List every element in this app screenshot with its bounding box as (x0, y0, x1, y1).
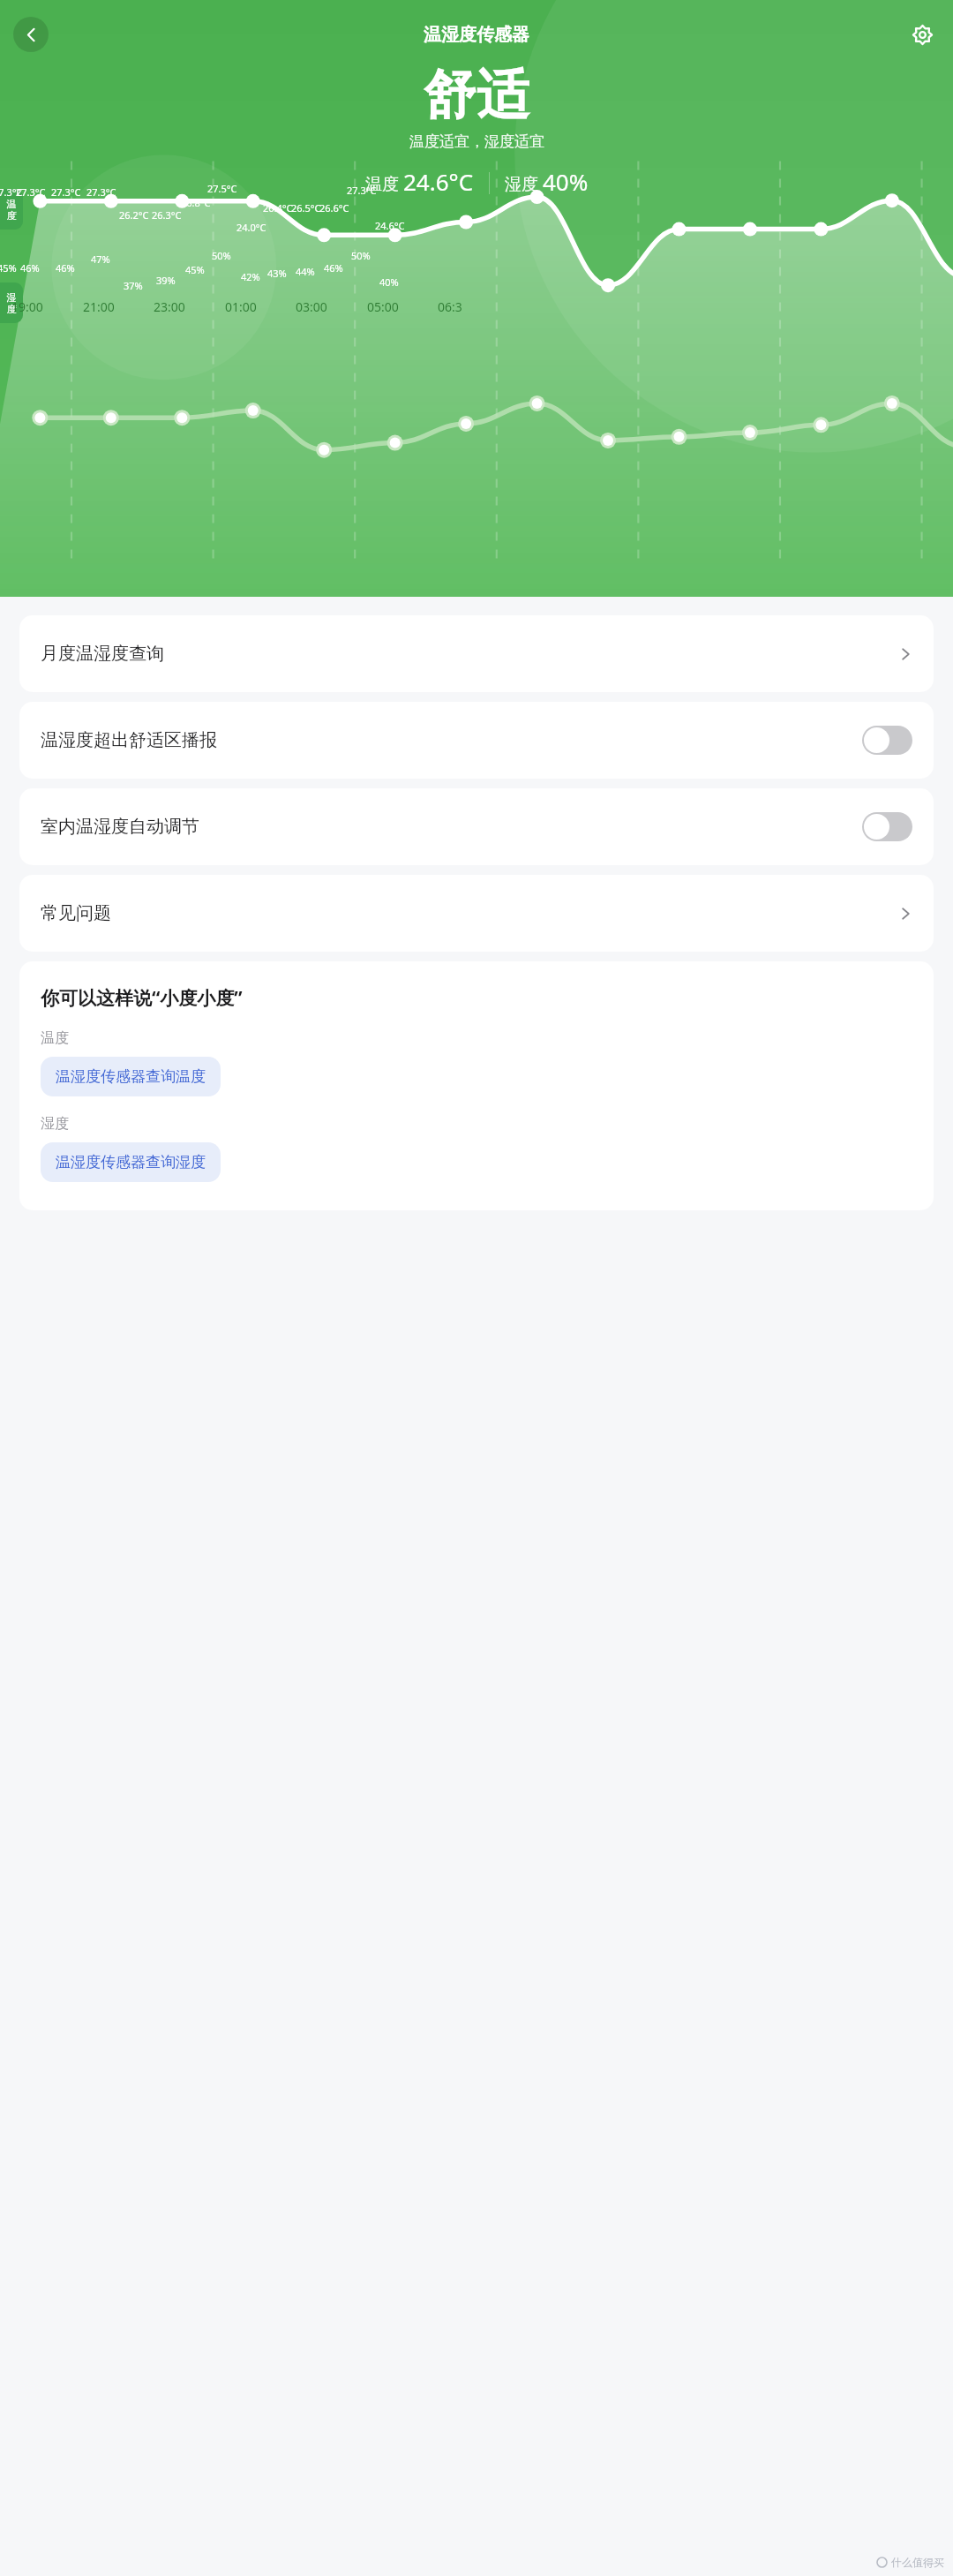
staticText: 温度适宜，湿度适宜 (409, 132, 544, 151)
staticText: 39% (156, 274, 176, 287)
staticText: 温度 (41, 1029, 69, 1047)
staticText: 47% (91, 252, 110, 266)
staticText: 45% (0, 261, 17, 275)
staticText: 你可以这样说“小度小度” (41, 985, 243, 1011)
staticText: 什么值得买 (891, 2556, 944, 2569)
staticText: 19:00 (11, 298, 43, 315)
staticText: 27.3°C (0, 185, 23, 199)
staticText: 40% (543, 166, 589, 197)
staticText: 24.6°C (403, 166, 474, 197)
staticText: 温湿度传感器查询湿度 (56, 1153, 206, 1171)
button[interactable]: 温湿度超出舒适区播报 (19, 702, 934, 779)
staticText: 26.5°C (291, 201, 321, 215)
button[interactable]: 室内温湿度自动调节 (19, 788, 934, 865)
button[interactable]: 月度温湿度查询 (19, 615, 934, 692)
staticText: 舒适 (424, 62, 529, 129)
button[interactable]: 常见问题 (19, 875, 934, 952)
staticText: 27.5°C (207, 182, 237, 195)
staticText: 27.3°C (51, 185, 81, 199)
button[interactable]: Settings (904, 17, 940, 52)
staticText: 温度 (6, 198, 17, 222)
staticText: 44% (296, 265, 315, 278)
staticText: 37% (124, 279, 143, 292)
staticText: 温湿度传感器查询温度 (56, 1067, 206, 1086)
staticText: 40% (379, 275, 399, 289)
staticText: 27.3°C (347, 184, 377, 197)
staticText: 温湿度超出舒适区播报 (41, 729, 217, 751)
staticText: 26.3°C (152, 208, 182, 222)
staticText: 26.6°C (319, 201, 349, 215)
staticText: 湿度 (41, 1115, 69, 1133)
staticText: 常见问题 (41, 902, 111, 924)
staticText: 06:3 (438, 298, 462, 315)
staticText: 月度温湿度查询 (41, 643, 164, 665)
staticText: 温度 (365, 172, 403, 195)
staticText: 03:00 (296, 298, 327, 315)
button[interactable]: 温湿度传感器查询温度 (41, 1057, 221, 1096)
button[interactable]: 温湿度传感器查询湿度 (41, 1142, 221, 1182)
staticText: 24.6°C (375, 219, 405, 232)
staticText: 05:00 (367, 298, 399, 315)
staticText: 46% (56, 261, 75, 275)
staticText: 27.3°C (86, 185, 116, 199)
staticText: 43% (267, 267, 287, 280)
staticText: 21:00 (83, 298, 115, 315)
staticText: 湿度 (505, 172, 543, 195)
staticText: 46% (324, 261, 343, 275)
staticText: 室内温湿度自动调节 (41, 816, 199, 838)
staticText: 26.8°C (181, 196, 211, 209)
staticText: 42% (241, 270, 260, 283)
staticText: 50% (351, 249, 371, 262)
staticText: 24.0°C (236, 221, 266, 234)
staticText: 26.4°C (263, 201, 293, 215)
staticText: 26.2°C (119, 208, 149, 222)
staticText: 01:00 (225, 298, 257, 315)
staticText: 湿度 (6, 291, 17, 315)
button[interactable]: Back (13, 17, 49, 52)
staticText: 23:00 (154, 298, 185, 315)
staticText: 50% (212, 249, 231, 262)
staticText: 45% (185, 263, 205, 276)
staticText: 温湿度传感器 (424, 24, 529, 46)
staticText: 27.3°C (16, 185, 46, 199)
staticText: 46% (20, 261, 40, 275)
